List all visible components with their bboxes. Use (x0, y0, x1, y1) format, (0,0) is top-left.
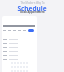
staticText: Schedule (17, 4, 47, 13)
button[interactable]: Book appointment (28, 29, 34, 32)
staticText: The Modern Way To (20, 1, 45, 5)
staticText: Book Appointment (20, 10, 45, 14)
